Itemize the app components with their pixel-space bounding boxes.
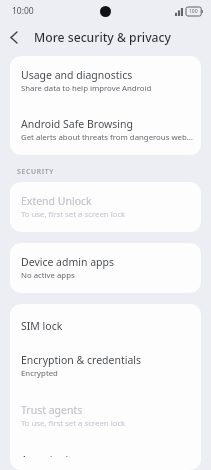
button[interactable]: Trust agents bbox=[10, 394, 201, 438]
staticText: Android Safe Browsing bbox=[21, 117, 133, 131]
staticText: App pinning bbox=[21, 453, 82, 457]
staticText: Get alerts about threats from dangerous … bbox=[21, 132, 193, 143]
staticText: More security & privacy bbox=[34, 29, 171, 46]
staticText: Share data to help improve Android bbox=[21, 83, 152, 94]
button[interactable]: Device admin apps bbox=[10, 246, 201, 290]
button[interactable]: Extend Unlock bbox=[10, 185, 201, 229]
button[interactable]: Encryption & credentials bbox=[10, 344, 201, 388]
staticText: SECURITY bbox=[17, 167, 54, 176]
staticText: Extend Unlock bbox=[21, 194, 92, 208]
button[interactable]: App pinning bbox=[10, 444, 201, 466]
staticText: 10:00 bbox=[12, 5, 34, 17]
staticText: Encryption & credentials bbox=[21, 353, 142, 367]
staticText: Encrypted bbox=[21, 368, 58, 379]
staticText: Usage and diagnostics bbox=[21, 68, 133, 82]
button[interactable]: Android Safe Browsing bbox=[10, 108, 201, 152]
staticText: Trust agents bbox=[21, 403, 83, 417]
staticText: No active apps bbox=[21, 270, 75, 281]
staticText: Device admin apps bbox=[21, 255, 115, 269]
button[interactable]: Back bbox=[0, 23, 28, 51]
staticText: To use, first set a screen lock bbox=[21, 209, 126, 220]
staticText: 100 bbox=[189, 8, 198, 15]
staticText: SIM lock bbox=[21, 319, 63, 333]
button[interactable]: SIM lock bbox=[10, 308, 201, 344]
button[interactable]: Usage and diagnostics bbox=[10, 59, 201, 103]
staticText: To use, first set a screen lock bbox=[21, 418, 126, 429]
